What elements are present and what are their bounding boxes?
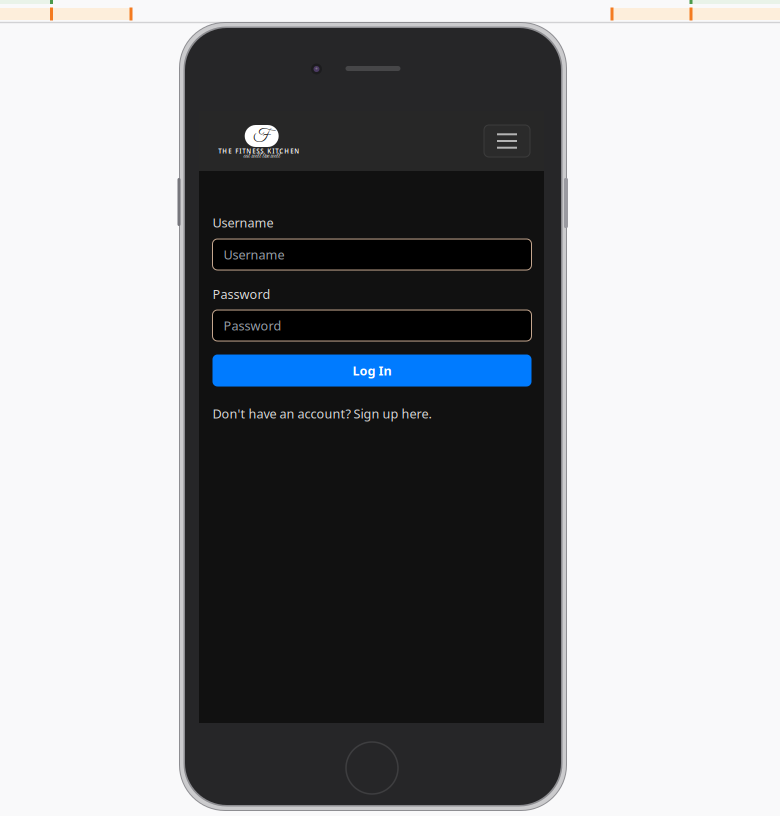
staticText: eat well live well [243, 151, 280, 161]
staticText: Username [212, 214, 273, 231]
staticText: Password [212, 285, 270, 303]
staticText: Log In [352, 362, 391, 379]
button[interactable]: Don't have an account? Sign up here. [212, 405, 431, 422]
staticText: T H E F I T N E S S K I T C H E N [218, 147, 299, 155]
staticText: Username [223, 246, 284, 263]
button[interactable]: Menu [484, 125, 530, 157]
button[interactable]: Log In [212, 354, 531, 386]
staticText: F [253, 126, 270, 146]
button[interactable]: Password [212, 310, 531, 341]
button[interactable]: Username [212, 239, 531, 270]
staticText: Password [223, 317, 281, 334]
staticText: Don't have an account? Sign up here. [212, 405, 431, 422]
